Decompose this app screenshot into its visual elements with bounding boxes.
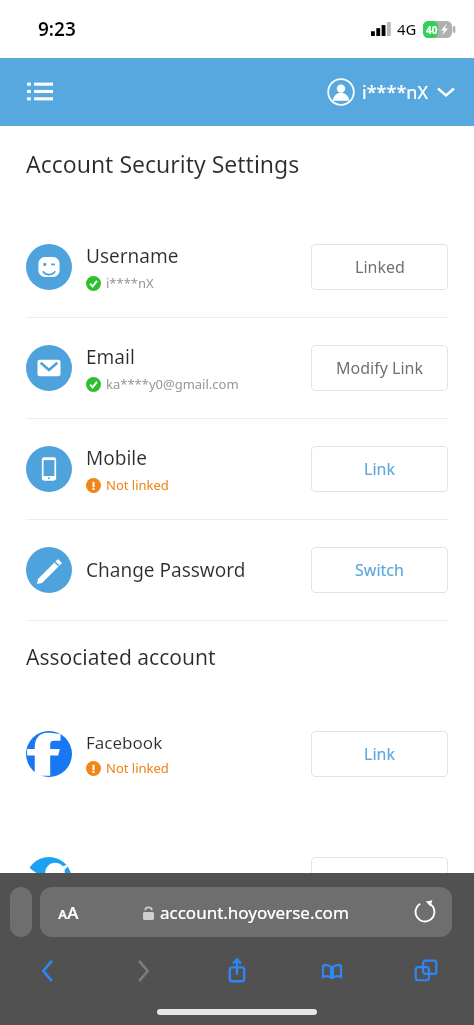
staticText: i****nX bbox=[362, 80, 428, 105]
staticText: Not linked bbox=[106, 476, 169, 494]
button[interactable]: ᴀA bbox=[40, 887, 452, 937]
button[interactable]: Twitter bbox=[26, 830, 448, 930]
button[interactable]: Bookmarks bbox=[310, 949, 354, 993]
button[interactable]: Forward bbox=[121, 949, 165, 993]
staticText: Link bbox=[364, 458, 395, 480]
staticText: Associated account bbox=[26, 643, 216, 672]
staticText: Switch bbox=[355, 559, 404, 581]
button[interactable]: Facebook bbox=[26, 704, 448, 804]
staticText: account.hoyoverse.com bbox=[160, 901, 349, 924]
button[interactable]: Back bbox=[26, 949, 70, 993]
staticText: Account Security Settings bbox=[26, 148, 300, 179]
button[interactable]: Link bbox=[311, 731, 448, 777]
staticText: Mobile bbox=[86, 445, 147, 471]
button[interactable]: Link bbox=[311, 446, 448, 492]
staticText: Email bbox=[86, 344, 135, 370]
staticText: 4G bbox=[397, 19, 417, 39]
button[interactable]: Username bbox=[26, 217, 448, 317]
staticText: Username bbox=[86, 243, 179, 269]
staticText: Twitter bbox=[86, 869, 142, 892]
button[interactable]: Reload bbox=[414, 901, 436, 923]
staticText: 40 bbox=[426, 23, 438, 37]
button[interactable]: Change Password bbox=[26, 520, 448, 620]
staticText: Modify Link bbox=[336, 357, 423, 379]
staticText: Facebook bbox=[86, 731, 163, 754]
staticText: Linked bbox=[355, 256, 405, 278]
staticText: Not linked bbox=[106, 759, 169, 777]
button[interactable]: Linked bbox=[311, 244, 448, 290]
staticText: ᴀA bbox=[58, 901, 79, 924]
staticText: Link bbox=[364, 869, 395, 891]
button[interactable]: Link bbox=[311, 857, 448, 903]
button[interactable]: Modify Link bbox=[311, 345, 448, 391]
button[interactable]: Tabs bbox=[404, 949, 448, 993]
staticText: Change Password bbox=[86, 557, 246, 583]
button[interactable]: Menu bbox=[18, 70, 62, 114]
button[interactable]: i****nX bbox=[327, 78, 454, 106]
button[interactable]: Mobile bbox=[26, 419, 448, 519]
button[interactable]: Share bbox=[215, 949, 259, 993]
staticText: 9:23 bbox=[38, 16, 76, 42]
staticText: ka****y0@gmail.com bbox=[106, 375, 239, 393]
button[interactable]: Email bbox=[26, 318, 448, 418]
staticText: i****nX bbox=[106, 274, 154, 292]
staticText: Link bbox=[364, 743, 395, 765]
button[interactable]: Switch bbox=[311, 547, 448, 593]
